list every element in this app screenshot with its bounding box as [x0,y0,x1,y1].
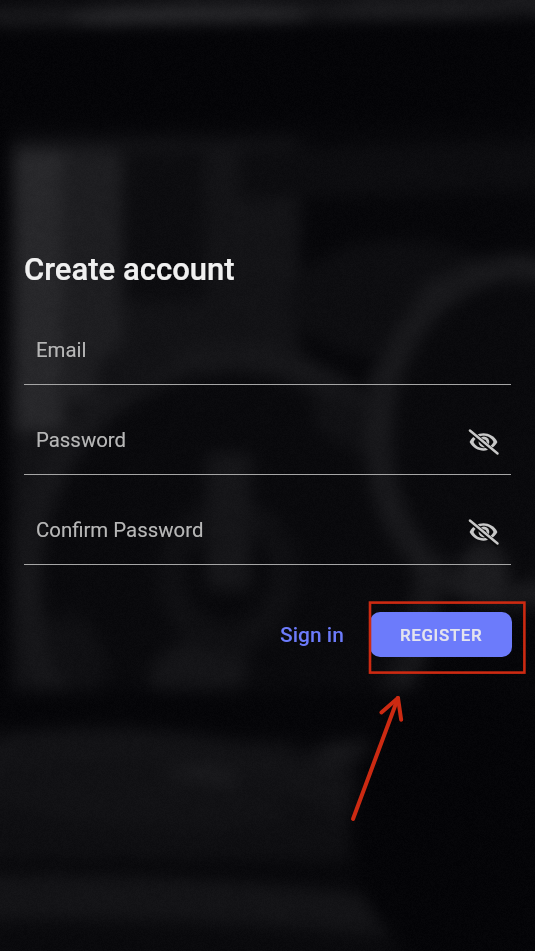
button[interactable]: Toggle Password visibility [464,423,502,461]
staticText: Confirm Password [36,518,204,542]
button[interactable]: Toggle Confirm Password visibility [464,513,502,551]
button[interactable]: Email [24,322,511,385]
button[interactable]: Password [24,412,511,475]
staticText: Sign in [280,623,344,648]
staticText: REGISTER [400,625,483,645]
button[interactable]: Confirm Password [24,502,511,565]
staticText: Email [36,338,87,362]
button[interactable]: REGISTER [370,612,512,657]
staticText: Create account [24,251,235,287]
button[interactable]: Sign in [269,612,355,657]
staticText: Password [36,428,127,452]
